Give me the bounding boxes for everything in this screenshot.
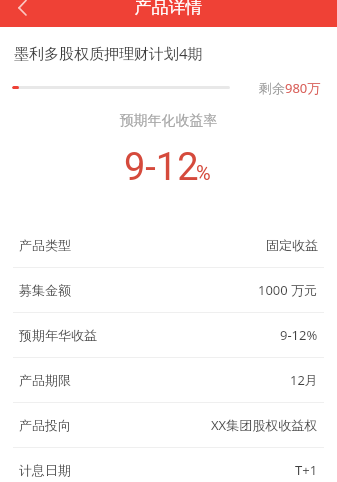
staticText: 9-12%	[280, 326, 318, 344]
staticText: 产品类型	[19, 237, 71, 253]
staticText: XX集团股权收益权	[211, 416, 318, 434]
staticText: 产品详情	[0, 0, 337, 18]
staticText: 1000 万元	[258, 281, 318, 299]
button[interactable]: 预期年华收益	[0, 313, 337, 358]
staticText: 固定收益	[266, 237, 318, 253]
staticText: %	[196, 161, 211, 184]
staticText: 预期年华收益	[19, 327, 97, 343]
staticText: 募集金额	[19, 282, 71, 298]
staticText: 计息日期	[19, 462, 71, 478]
staticText: 产品期限	[19, 372, 71, 388]
button[interactable]: Back	[8, 0, 36, 23]
button[interactable]: 计息日期	[0, 448, 337, 482]
staticText: 12月	[290, 371, 318, 389]
staticText: 预期年化收益率	[0, 112, 337, 130]
staticText: 剩余980万	[259, 79, 321, 97]
staticText: 墨利多股权质押理财计划4期	[14, 43, 203, 63]
staticText: 产品投向	[19, 417, 71, 433]
button[interactable]: 产品投向	[0, 403, 337, 448]
button[interactable]: 产品类型	[0, 223, 337, 268]
staticText: 9-12	[124, 145, 199, 190]
button[interactable]: 募集金额	[0, 268, 337, 313]
staticText: T+1	[295, 461, 318, 479]
button[interactable]: 产品期限	[0, 358, 337, 403]
